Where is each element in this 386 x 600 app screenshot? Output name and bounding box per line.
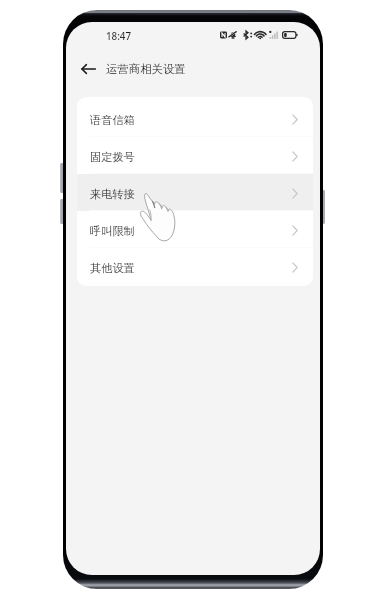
staticText: 固定拨号: [90, 150, 135, 164]
button[interactable]: Back: [74, 54, 102, 82]
staticText: 18:47: [106, 30, 132, 43]
button[interactable]: 来电转接: [77, 174, 313, 211]
button[interactable]: 固定拨号: [77, 137, 313, 174]
button[interactable]: 其他设置: [77, 248, 313, 285]
staticText: 其他设置: [90, 261, 135, 275]
staticText: 呼叫限制: [90, 224, 135, 238]
staticText: 语音信箱: [90, 113, 135, 127]
button[interactable]: 语音信箱: [77, 100, 313, 137]
button[interactable]: 呼叫限制: [77, 211, 313, 248]
staticText: 运营商相关设置: [106, 62, 186, 76]
staticText: 来电转接: [90, 187, 135, 201]
